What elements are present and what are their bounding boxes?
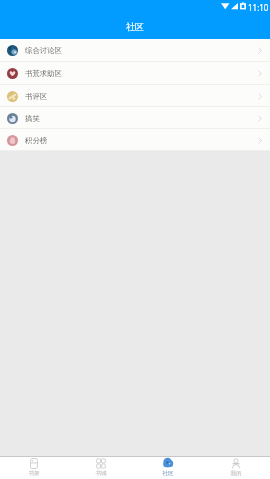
button[interactable]: 书荒求助区	[0, 62, 270, 85]
button[interactable]: 积分榜	[0, 129, 270, 151]
staticText: 我的	[230, 470, 242, 477]
staticText: 社区	[162, 470, 174, 477]
staticText: 社区	[126, 21, 144, 32]
staticText: 综合讨论区	[25, 46, 62, 55]
staticText: 书荒求助区	[25, 69, 62, 78]
button[interactable]: 社区	[134, 457, 202, 479]
button[interactable]: 书评区	[0, 85, 270, 107]
button[interactable]: 综合讨论区	[0, 39, 270, 62]
staticText: 书架	[28, 470, 40, 477]
staticText: 搞笑	[25, 114, 40, 123]
button[interactable]: 搞笑	[0, 107, 270, 129]
button[interactable]: 我的	[202, 457, 270, 479]
staticText: 书城	[95, 470, 107, 477]
staticText: 书评区	[25, 92, 48, 101]
staticText: 积分榜	[25, 136, 48, 145]
button[interactable]: 书城	[67, 457, 134, 479]
button[interactable]: 书架	[0, 457, 67, 479]
staticText: 11:10	[248, 2, 269, 13]
